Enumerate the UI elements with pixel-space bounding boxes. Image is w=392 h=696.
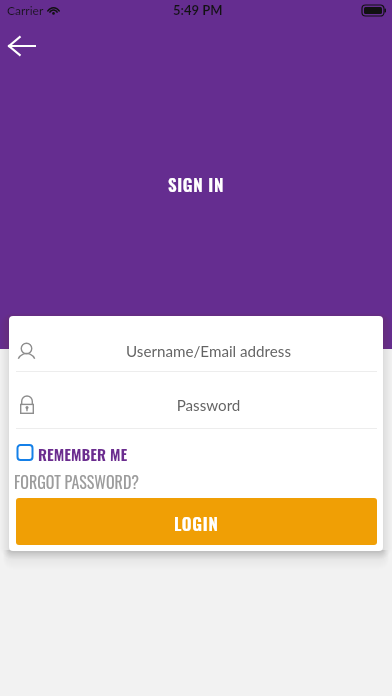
- button[interactable]: FORGOT PASSWORD?: [14, 470, 140, 494]
- button[interactable]: Back: [0, 23, 45, 69]
- button[interactable]: LOGIN: [16, 498, 377, 545]
- staticText: Carrier: [7, 3, 44, 17]
- staticText: SIGN IN: [0, 172, 392, 197]
- staticText: Password: [37, 396, 380, 414]
- staticText: LOGIN: [174, 511, 219, 536]
- staticText: Username/Email address: [37, 342, 380, 360]
- staticText: REMEMBER ME: [38, 443, 128, 465]
- button[interactable]: Password: [9, 372, 383, 427]
- staticText: 5:49 PM: [173, 2, 223, 18]
- button[interactable]: REMEMBER ME: [15, 441, 128, 466]
- button[interactable]: Username/Email address: [9, 316, 383, 371]
